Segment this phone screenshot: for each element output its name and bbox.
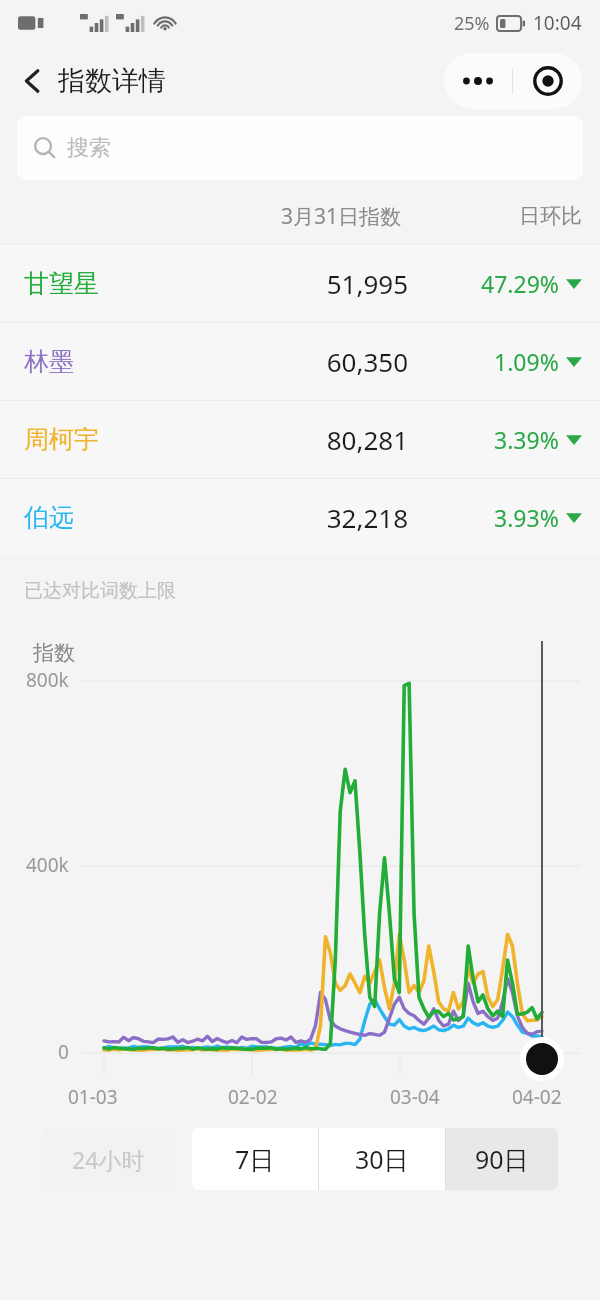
staticText: 已达对比词数上限	[24, 579, 176, 603]
button[interactable]: 更多与胶囊菜单	[444, 53, 582, 109]
button[interactable]: 周柯宇	[0, 401, 600, 478]
staticText: 3.39%	[494, 424, 559, 455]
staticText: 搜索	[67, 134, 111, 162]
button[interactable]: 24小时	[42, 1128, 174, 1190]
staticText: 51,995	[326, 266, 408, 301]
staticText: 30日	[355, 1142, 409, 1176]
staticText: 3.93%	[494, 502, 559, 533]
button[interactable]: 林墨	[0, 323, 600, 400]
staticText: 林墨	[24, 346, 74, 377]
staticText: 24小时	[72, 1144, 145, 1175]
staticText: 02-02	[228, 1084, 278, 1110]
staticText: 03-04	[390, 1084, 440, 1110]
staticText: 25%	[454, 11, 490, 36]
staticText: 指数详情	[58, 64, 166, 98]
button[interactable]: 搜索	[17, 116, 583, 180]
staticText: 04-02	[512, 1084, 562, 1110]
staticText: 400k	[26, 852, 69, 878]
staticText: 周柯宇	[24, 424, 99, 455]
staticText: 3月31日指数	[281, 202, 402, 231]
staticText: 60,350	[326, 344, 408, 379]
staticText: 伯远	[24, 502, 74, 533]
staticText: 800k	[26, 667, 69, 693]
staticText: 7日	[235, 1142, 275, 1176]
staticText: 甘望星	[24, 268, 99, 299]
button[interactable]: 7日	[192, 1128, 318, 1190]
staticText: 指数	[33, 640, 75, 666]
button[interactable]: 30日	[319, 1128, 445, 1190]
staticText: 10:04	[533, 10, 582, 36]
staticText: 80,281	[326, 422, 408, 457]
button[interactable]: 返回	[14, 60, 52, 102]
button[interactable]: 90日	[446, 1128, 558, 1190]
staticText: 47.29%	[481, 268, 559, 299]
staticText: 90日	[475, 1142, 529, 1176]
staticText: 1.09%	[494, 346, 559, 377]
staticText: 0	[58, 1039, 69, 1065]
staticText: 32,218	[326, 500, 408, 535]
button[interactable]: 甘望星	[0, 245, 600, 322]
button[interactable]: 伯远	[0, 479, 600, 556]
staticText: 01-03	[68, 1084, 118, 1110]
staticText: 日环比	[519, 203, 582, 229]
